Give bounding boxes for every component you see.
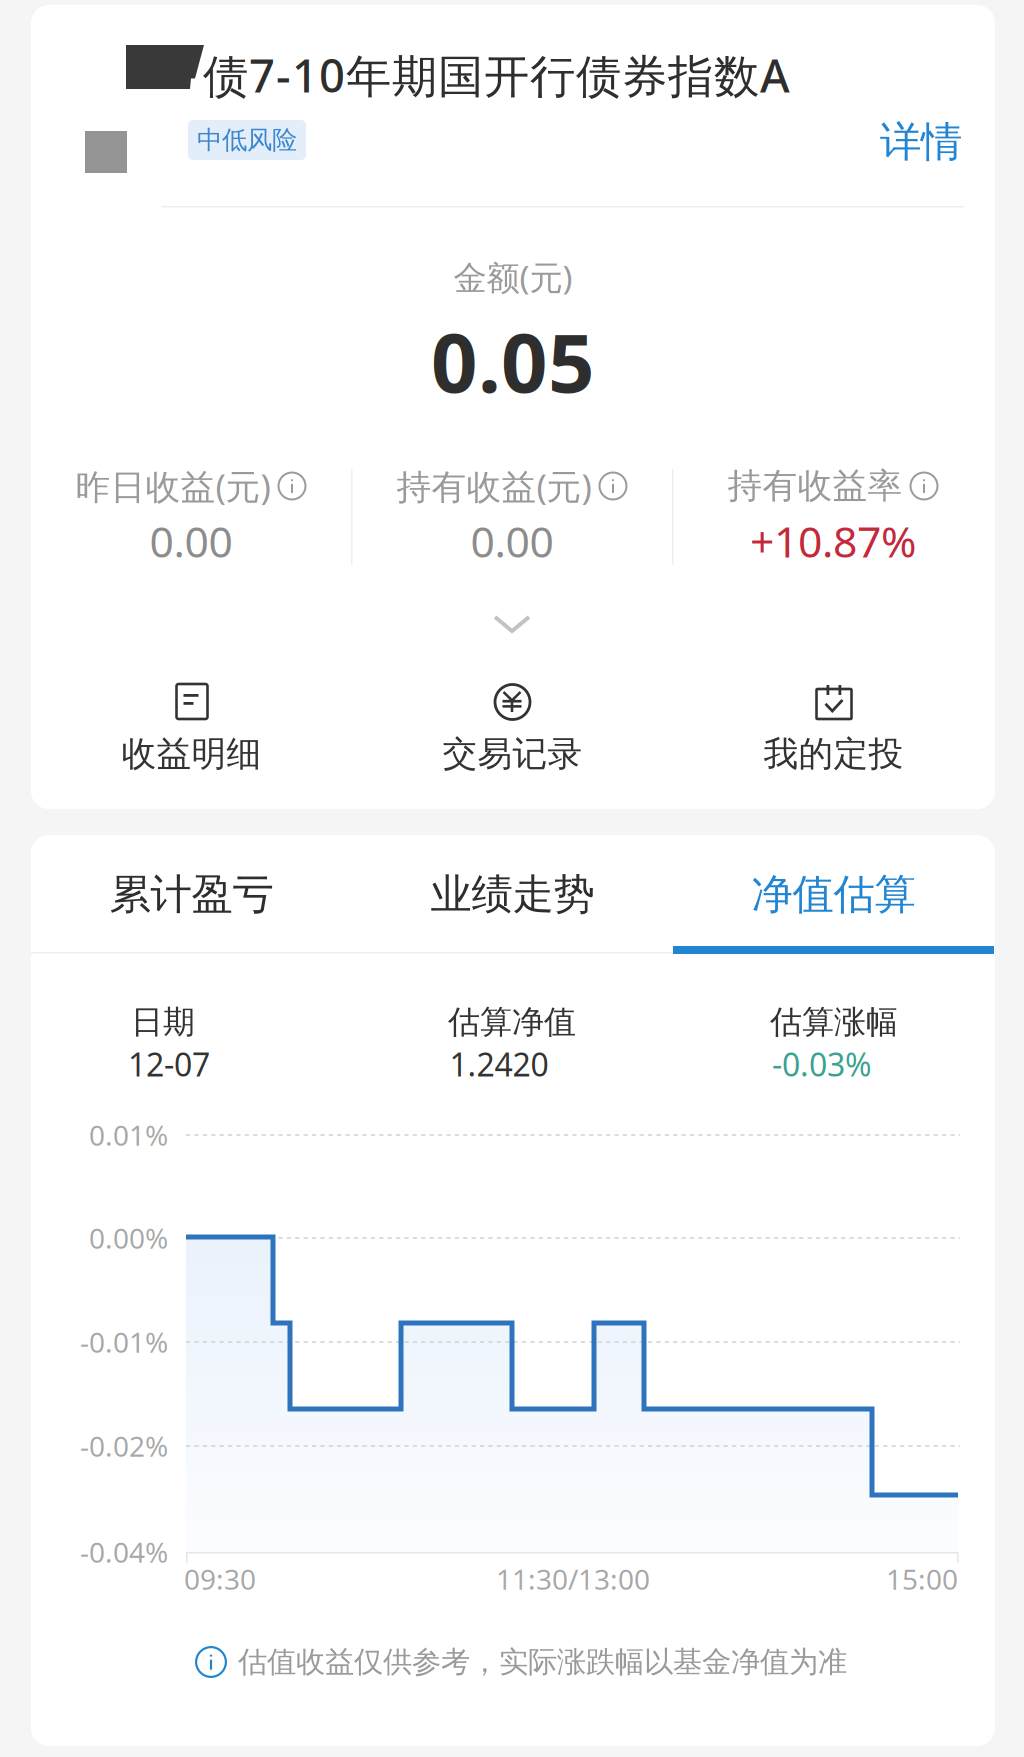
staticText: -0.03% (772, 1043, 872, 1085)
staticText: 金额(元) (453, 255, 572, 299)
button[interactable]: 说明 (598, 471, 627, 500)
staticText: 中低风险 (197, 124, 297, 155)
staticText: 债7-10年期国开行债券指数A (203, 45, 790, 105)
staticText: +10.87% (750, 513, 916, 569)
staticText: -0.01% (80, 1323, 168, 1361)
staticText: 净值估算 (751, 869, 915, 920)
staticText: 0.00% (89, 1219, 168, 1257)
staticText: 昨日收益(元) (75, 463, 270, 509)
staticText: 0.05 (431, 307, 595, 415)
button[interactable]: 详情 (0, 0, 96, 50)
staticText: 详情 (880, 117, 962, 167)
staticText: 日期 (131, 1002, 195, 1042)
button[interactable]: 我的定投 (673, 678, 994, 788)
staticText: 0.00 (470, 513, 553, 569)
button[interactable]: 说明 (909, 471, 938, 500)
button[interactable]: 收益明细 (31, 678, 352, 788)
staticText: 09:30 (184, 1560, 256, 1598)
staticText: 业绩走势 (430, 869, 594, 920)
staticText: 11:30/13:00 (496, 1560, 650, 1598)
staticText: 估算净值 (448, 1002, 576, 1042)
staticText: 收益明细 (121, 733, 261, 775)
button[interactable]: 说明 (277, 471, 306, 500)
button[interactable]: 净值估算 (0, 0, 321, 119)
staticText: 15:00 (886, 1560, 958, 1598)
staticText: 我的定投 (763, 733, 903, 775)
staticText: 12-07 (128, 1043, 210, 1085)
button[interactable]: 展开 (452, 598, 572, 650)
button[interactable]: 业绩走势 (0, 0, 321, 119)
staticText: 交易记录 (442, 733, 582, 775)
staticText: -0.02% (80, 1427, 168, 1465)
staticText: 0.01% (89, 1116, 168, 1154)
button[interactable]: 交易记录 (352, 678, 673, 788)
button[interactable]: 累计盈亏 (0, 0, 321, 119)
staticText: 累计盈亏 (109, 869, 273, 920)
staticText: 1.2420 (449, 1043, 548, 1085)
staticText: 估值收益仅供参考，实际涨跌幅以基金净值为准 (238, 1644, 847, 1680)
staticText: 0.00 (149, 513, 232, 569)
staticText: 持有收益(元) (396, 463, 591, 509)
staticText: 估算涨幅 (770, 1002, 898, 1042)
staticText: 持有收益率 (727, 465, 902, 507)
staticText: -0.04% (80, 1533, 168, 1571)
